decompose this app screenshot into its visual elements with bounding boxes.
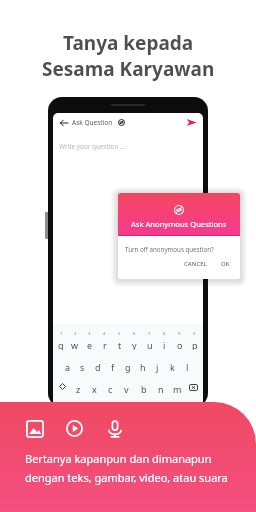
button[interactable]: Record voice — [105, 419, 124, 438]
staticText: 1 — [60, 331, 63, 337]
staticText: dengan teks, gambar, video, atau suara — [25, 470, 228, 485]
staticText: w — [71, 339, 79, 350]
staticText: u — [147, 339, 153, 350]
staticText: q — [58, 339, 64, 350]
staticText: c — [108, 383, 113, 395]
staticText: d — [95, 361, 101, 373]
staticText: Ask Question — [72, 118, 113, 127]
staticText: z — [76, 383, 81, 395]
staticText: 8 — [163, 331, 166, 337]
staticText: p — [192, 339, 198, 350]
staticText: o — [177, 339, 183, 350]
staticText: OK — [221, 260, 230, 268]
staticText: y — [132, 339, 137, 350]
staticText: t — [118, 339, 122, 350]
button[interactable]: Anonymous — [117, 118, 125, 126]
staticText: x — [92, 383, 97, 395]
staticText: 5 — [118, 331, 121, 337]
staticText: n — [158, 383, 164, 395]
staticText: 4 — [103, 331, 106, 337]
staticText: CANCEL — [184, 260, 207, 268]
staticText: h — [140, 361, 146, 373]
staticText: e — [87, 339, 93, 350]
staticText: 6 — [133, 331, 136, 337]
staticText: g — [125, 361, 131, 373]
staticText: i — [163, 339, 166, 350]
staticText: 3 — [88, 331, 91, 337]
staticText: v — [124, 383, 129, 395]
staticText: m — [173, 383, 182, 395]
staticText: Write your question ... — [59, 142, 126, 151]
staticText: Sesama Karyawan — [42, 56, 215, 82]
staticText: Tanya kepada — [63, 30, 194, 56]
staticText: 7 — [148, 331, 151, 337]
staticText: f — [111, 361, 115, 373]
button[interactable]: Add video — [65, 419, 84, 438]
button[interactable]: CANCEL — [182, 258, 209, 270]
staticText: 9 — [178, 331, 181, 337]
staticText: 2 — [74, 331, 77, 337]
staticText: a — [65, 361, 71, 373]
staticText: j — [156, 361, 159, 373]
staticText: Ask Anonymous Questions — [131, 219, 227, 229]
button[interactable]: Back — [59, 118, 68, 127]
staticText: l — [186, 361, 189, 373]
staticText: Turn off anonymous question? — [125, 245, 214, 253]
staticText: 0 — [193, 331, 196, 337]
staticText: b — [141, 383, 147, 395]
staticText: Bertanya kapanpun dan dimanapun — [25, 451, 212, 466]
staticText: s — [80, 361, 85, 373]
button[interactable]: Send — [185, 116, 197, 128]
button[interactable]: OK — [219, 258, 232, 270]
staticText: r — [103, 339, 107, 350]
staticText: k — [170, 361, 175, 373]
button[interactable]: Add image — [25, 419, 44, 438]
